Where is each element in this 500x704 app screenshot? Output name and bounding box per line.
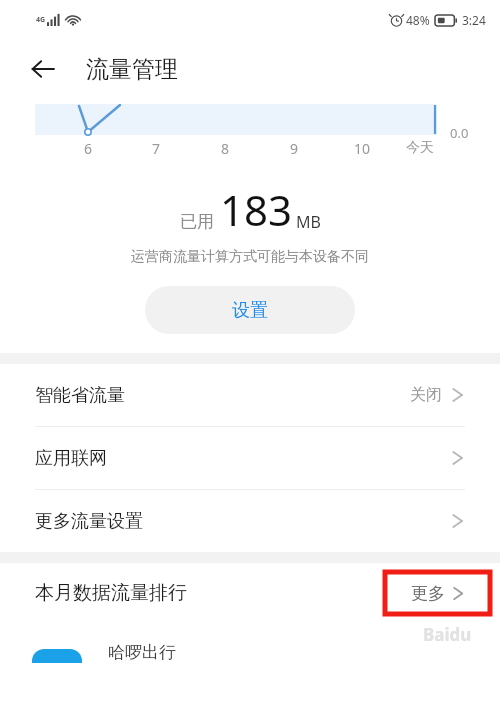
button[interactable]: 更多 [385,572,490,614]
staticText: 6 [68,139,108,158]
staticText: 更多流量设置 [35,510,143,533]
staticText: 流量管理 [86,55,178,84]
button[interactable]: 智能省流量 [0,364,500,426]
staticText: 本月数据流量排行 [35,581,187,605]
staticText: 4G [36,15,46,25]
staticText: 10 [342,139,382,158]
staticText: 3:24 [462,12,486,28]
staticText: 9 [274,139,314,158]
button[interactable]: 应用联网 [0,427,500,489]
button[interactable]: 设置 [145,286,355,334]
staticText: 关闭 [410,385,442,405]
staticText: 智能省流量 [35,384,125,407]
staticText: 已用 [180,211,214,232]
staticText: 8 [205,139,245,158]
staticText: 48% [406,12,430,28]
staticText: 今天 [400,139,440,157]
staticText: 应用联网 [35,447,107,470]
staticText: 运营商流量计算方式可能与本设备不同 [131,248,369,266]
staticText: 设置 [232,299,268,322]
staticText: MB [296,211,321,233]
staticText: 7 [136,139,176,158]
button[interactable]: Back [22,48,64,90]
button[interactable]: 更多流量设置 [0,490,500,552]
staticText: Baidu [423,623,472,646]
staticText: 更多 [411,583,445,604]
staticText: 183 [220,181,293,238]
staticText: 哈啰出行 [108,642,176,663]
staticText: 0.0 [450,124,469,142]
